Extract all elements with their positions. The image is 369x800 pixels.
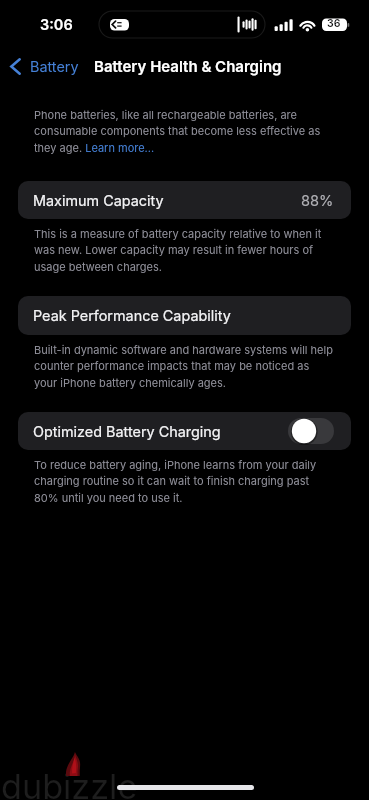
button[interactable]: Peak Performance Capability	[18, 296, 351, 335]
staticText: Battery Health & Charging	[94, 57, 282, 75]
staticText: Phone batteries, like all rechargeable b…	[34, 108, 333, 155]
staticText: 3:06	[40, 16, 73, 34]
staticText: Battery	[30, 58, 79, 75]
staticText: Built-in dynamic software and hardware s…	[34, 343, 333, 390]
button[interactable]: Battery	[10, 58, 79, 75]
button[interactable]: Learn more about battery health	[85, 142, 156, 156]
staticText: dubizzle	[1, 766, 138, 800]
button[interactable]: Optimized Battery Charging toggle	[288, 418, 334, 444]
staticText: Optimized Battery Charging	[33, 423, 221, 440]
staticText: Maximum Capacity	[33, 192, 164, 209]
staticText: 88%	[301, 192, 334, 210]
staticText: This is a measure of battery capacity re…	[34, 227, 333, 274]
button[interactable]: Maximum Capacity	[18, 181, 351, 219]
staticText: Peak Performance Capability	[33, 307, 231, 324]
staticText: To reduce battery aging, iPhone learns f…	[34, 458, 333, 505]
staticText: 36	[327, 17, 341, 30]
